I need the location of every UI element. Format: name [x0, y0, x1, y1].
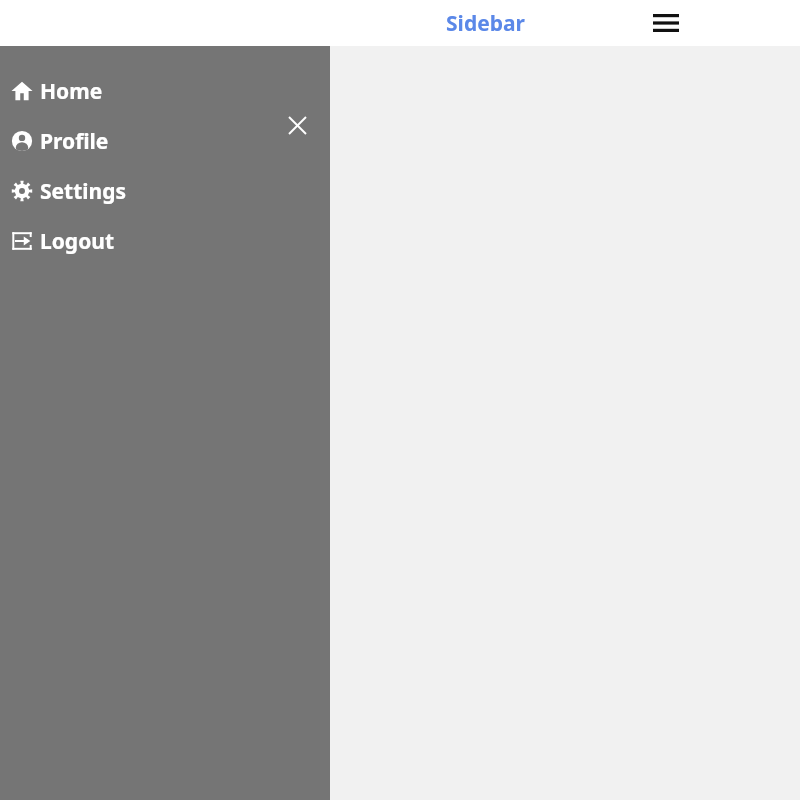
staticText: Sidebar	[446, 9, 525, 38]
staticText: Profile	[40, 127, 109, 156]
button[interactable]: Settings	[0, 166, 330, 216]
button[interactable]: Home	[0, 66, 330, 116]
staticText: Home	[40, 77, 103, 106]
button[interactable]: Close menu	[275, 103, 319, 147]
button[interactable]: Logout	[0, 216, 330, 266]
button[interactable]: Profile	[0, 116, 330, 166]
staticText: Logout	[40, 227, 115, 256]
staticText: Settings	[40, 177, 127, 206]
button[interactable]: Open menu	[643, 0, 689, 46]
